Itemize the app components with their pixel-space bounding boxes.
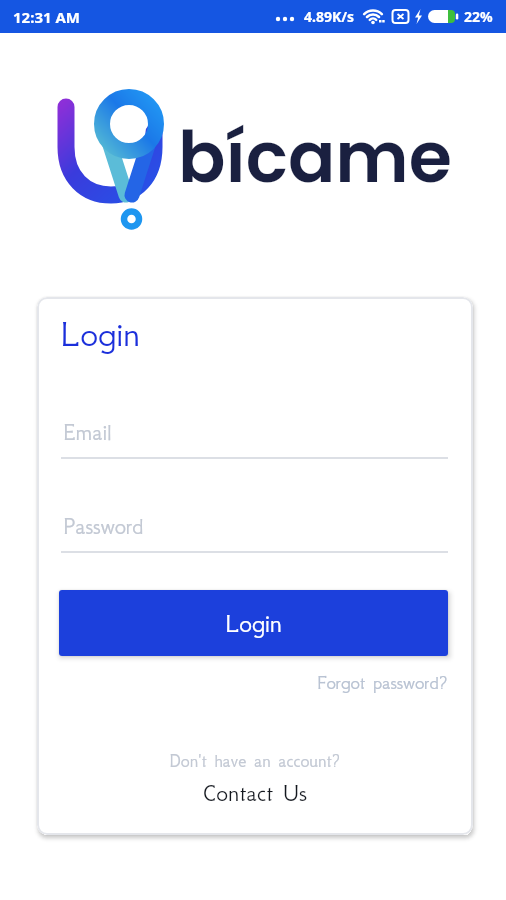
staticText: Login	[60, 313, 141, 355]
button[interactable]: Login	[59, 590, 448, 656]
button[interactable]: Contact Us	[175, 776, 335, 810]
staticText: Login	[225, 608, 282, 638]
button[interactable]: Password	[61, 509, 448, 553]
staticText: Email	[63, 419, 112, 446]
button[interactable]: Forgot password?	[287, 668, 448, 698]
staticText: 22%	[464, 7, 493, 26]
staticText: Contact Us	[203, 779, 307, 807]
button[interactable]: Email	[61, 415, 448, 459]
staticText: Forgot password?	[317, 672, 448, 694]
staticText: 12:31 AM	[13, 7, 80, 27]
staticText: 4.89K/s	[304, 7, 355, 26]
staticText: Don't have an account?	[37, 750, 473, 771]
staticText: Password	[63, 513, 144, 540]
staticText: bícame	[178, 108, 452, 206]
